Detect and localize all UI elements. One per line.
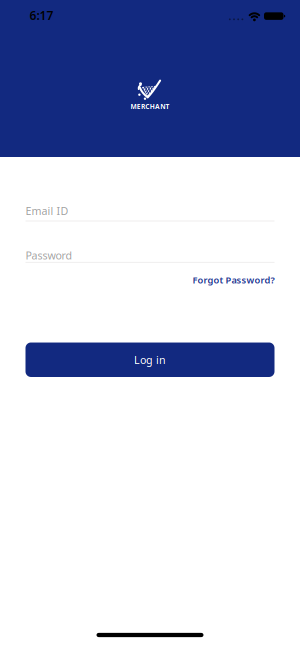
staticText: Log in xyxy=(134,353,166,367)
staticText: Email ID xyxy=(25,204,68,218)
staticText: MERCHANT xyxy=(130,102,170,111)
staticText: 6:17 xyxy=(30,7,54,23)
staticText: Forgot Password? xyxy=(192,274,274,286)
staticText: Password xyxy=(25,248,72,262)
